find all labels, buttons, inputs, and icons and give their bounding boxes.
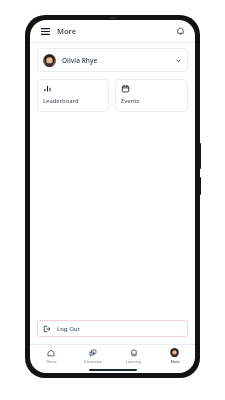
button[interactable]: Home	[30, 347, 72, 366]
staticText: Learning	[126, 359, 141, 364]
staticText: More	[170, 359, 180, 364]
button[interactable]: More	[154, 346, 195, 366]
staticText: Home	[46, 359, 57, 364]
staticText: More	[57, 26, 77, 36]
button[interactable]: Discussion	[72, 347, 113, 366]
staticText: Log Out	[57, 325, 80, 333]
staticText: Events	[121, 97, 140, 105]
button[interactable]: Leaderboard	[37, 79, 109, 112]
button[interactable]: Open navigation menu	[38, 24, 52, 38]
staticText: Leaderboard	[43, 97, 79, 105]
button[interactable]: Learning	[113, 347, 154, 366]
button[interactable]: Olivia Rhye	[37, 48, 188, 72]
button[interactable]: Notifications	[173, 24, 187, 38]
button[interactable]: Log Out	[37, 320, 188, 337]
button[interactable]: Events	[115, 79, 188, 112]
staticText: Olivia Rhye	[62, 56, 98, 65]
staticText: Discussion	[84, 359, 102, 364]
